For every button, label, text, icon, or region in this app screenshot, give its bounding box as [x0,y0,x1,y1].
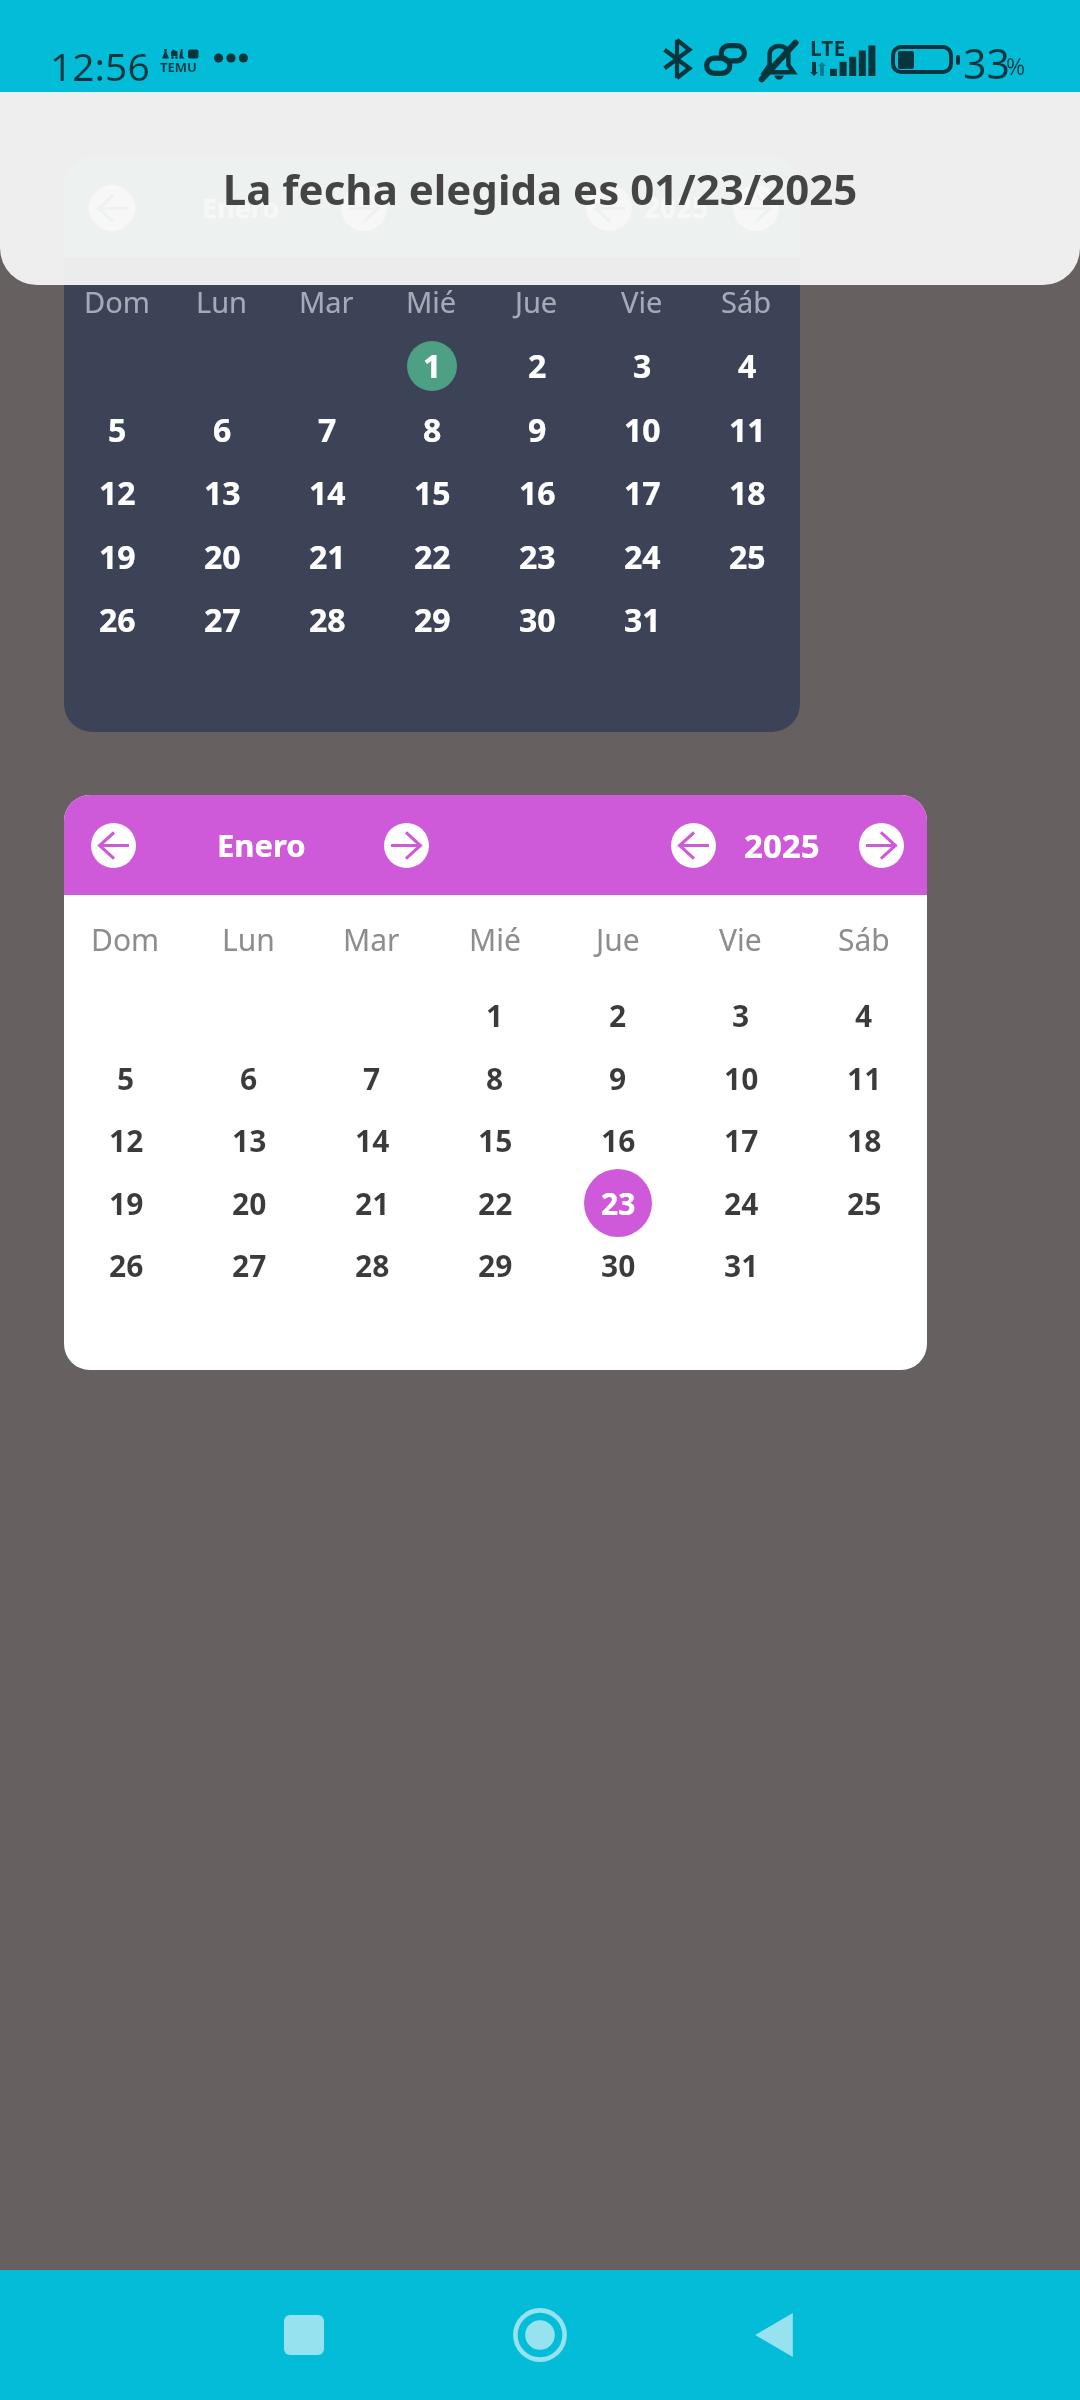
button[interactable]: 9 [584,1044,652,1112]
button[interactable]: 21 [302,532,352,582]
staticText: Vie [621,282,663,321]
button[interactable]: Next year [733,185,779,231]
button[interactable]: 18 [830,1106,898,1174]
button[interactable]: 17 [617,468,667,518]
button[interactable]: 12 [92,468,142,518]
button[interactable]: 8 [461,1044,529,1112]
staticText: 2025 [644,188,709,226]
button[interactable]: 13 [197,468,247,518]
button[interactable]: Home [480,2275,600,2395]
staticText: 7 [363,1058,381,1099]
staticText: 21 [309,535,346,579]
button[interactable]: La fecha elegida es 01/23/2025 [0,92,1080,285]
staticText: Enero [217,824,306,866]
staticText: Jue [596,919,640,960]
staticText: 9 [609,1058,627,1099]
button[interactable]: 10 [617,405,667,455]
button[interactable]: 17 [707,1106,775,1174]
staticText: Lun [222,919,275,960]
button[interactable]: 20 [197,532,247,582]
button[interactable]: 6 [197,405,247,455]
button[interactable]: 2 [584,981,652,1049]
staticText: 10 [724,1058,759,1099]
staticText: 31 [624,598,661,642]
button[interactable]: 13 [215,1106,283,1174]
button[interactable]: 3 [617,341,667,391]
button[interactable]: Previous month [91,823,136,868]
button[interactable]: 25 [830,1169,898,1237]
button[interactable]: Next month [384,823,429,868]
button[interactable]: 14 [302,468,352,518]
staticText: Sáb [838,919,890,960]
staticText: 1 [423,344,442,388]
button[interactable]: Previous year [671,823,716,868]
button[interactable]: 31 [707,1231,775,1299]
button[interactable]: 11 [722,405,772,455]
staticText: 16 [519,471,556,515]
button[interactable]: 5 [92,1044,160,1112]
staticText: Mié [469,919,521,960]
button[interactable]: Previous month [89,185,135,231]
button[interactable]: 6 [215,1044,283,1112]
button[interactable]: Next month [341,185,387,231]
button[interactable]: 1 [407,341,457,391]
button[interactable]: 7 [338,1044,406,1112]
button[interactable]: 8 [407,405,457,455]
button[interactable]: 16 [512,468,562,518]
button[interactable]: Recents [244,2275,364,2395]
staticText: 13 [204,471,241,515]
button[interactable]: Previous year [586,185,632,231]
button[interactable]: 29 [461,1231,529,1299]
button[interactable]: 12 [92,1106,160,1174]
button[interactable]: 27 [215,1231,283,1299]
button[interactable]: 22 [461,1169,529,1237]
staticText: 13 [232,1120,267,1161]
button[interactable]: 4 [830,981,898,1049]
button[interactable]: 19 [92,532,142,582]
button[interactable]: 23 [584,1169,652,1237]
button[interactable]: 21 [338,1169,406,1237]
button[interactable]: 15 [407,468,457,518]
staticText: 24 [624,535,661,579]
button[interactable]: 31 [617,595,667,645]
button[interactable]: 24 [617,532,667,582]
button[interactable]: 25 [722,532,772,582]
button[interactable]: Back [714,2275,834,2395]
button[interactable]: 16 [584,1106,652,1174]
staticText: 4 [738,344,757,388]
button[interactable]: 22 [407,532,457,582]
button[interactable]: 28 [338,1231,406,1299]
button[interactable]: 5 [92,405,142,455]
button[interactable]: 27 [197,595,247,645]
button[interactable]: 15 [461,1106,529,1174]
button[interactable]: 10 [707,1044,775,1112]
button[interactable]: Next year [859,823,904,868]
button[interactable]: 9 [512,405,562,455]
staticText: 3 [732,995,750,1036]
staticText: 15 [478,1120,513,1161]
button[interactable]: 2 [512,341,562,391]
staticText: 30 [519,598,556,642]
staticText: 22 [414,535,451,579]
button[interactable]: 26 [92,595,142,645]
button[interactable]: 24 [707,1169,775,1237]
button[interactable]: 1 [461,981,529,1049]
button[interactable]: 30 [512,595,562,645]
button[interactable]: 14 [338,1106,406,1174]
staticText: 23 [601,1183,636,1224]
button[interactable]: 30 [584,1231,652,1299]
button[interactable]: 18 [722,468,772,518]
staticText: 4 [855,995,873,1036]
button[interactable]: 29 [407,595,457,645]
button[interactable]: 3 [707,981,775,1049]
button[interactable]: 28 [302,595,352,645]
button[interactable]: 19 [92,1169,160,1237]
button[interactable]: 4 [722,341,772,391]
button[interactable]: 7 [302,405,352,455]
button[interactable]: 23 [512,532,562,582]
button[interactable]: 26 [92,1231,160,1299]
button[interactable]: 20 [215,1169,283,1237]
staticText: 30 [601,1245,636,1286]
button[interactable]: 11 [830,1044,898,1112]
staticText: Dom [84,282,150,321]
